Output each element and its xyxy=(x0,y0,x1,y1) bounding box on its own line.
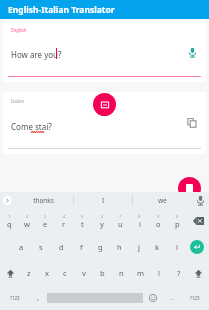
staticText: j xyxy=(138,242,140,252)
button[interactable]: Clear text xyxy=(178,177,201,200)
button[interactable]: . xyxy=(163,286,181,310)
button[interactable]: 6 xyxy=(92,208,111,234)
button[interactable]: m xyxy=(131,260,150,286)
button[interactable]: g xyxy=(91,234,110,260)
button[interactable]: More suggestions xyxy=(0,192,14,208)
staticText: a xyxy=(19,242,24,252)
staticText: Come stai? xyxy=(11,121,52,132)
button[interactable]: 4 xyxy=(54,208,73,234)
staticText: 1 xyxy=(8,214,11,219)
staticText: r xyxy=(62,219,66,229)
button[interactable]: a xyxy=(11,234,31,260)
staticText: 9 xyxy=(157,214,160,219)
button[interactable]: 1 xyxy=(0,208,18,234)
staticText: q xyxy=(7,219,12,229)
button[interactable]: ?123 xyxy=(181,286,209,310)
staticText: k xyxy=(155,242,160,252)
staticText: , xyxy=(37,293,39,303)
staticText: v xyxy=(82,268,86,278)
staticText: w xyxy=(24,219,30,229)
staticText: 2 xyxy=(26,214,29,219)
staticText: ?123 xyxy=(10,295,20,301)
staticText: English xyxy=(11,27,27,33)
staticText: z xyxy=(27,268,31,278)
staticText: ? xyxy=(177,268,181,278)
button[interactable]: we xyxy=(133,192,191,208)
button[interactable]: 9 xyxy=(149,208,168,234)
button[interactable]: Italian xyxy=(3,92,206,154)
button[interactable]: Swap languages xyxy=(93,93,116,116)
staticText: c xyxy=(63,268,67,278)
staticText: m xyxy=(137,268,145,278)
button[interactable]: h xyxy=(110,234,129,260)
staticText: . xyxy=(171,293,173,303)
button[interactable]: , xyxy=(29,286,47,310)
button[interactable]: n xyxy=(112,260,131,286)
button[interactable]: Emoji xyxy=(143,286,163,310)
button[interactable]: d xyxy=(51,234,71,260)
staticText: u xyxy=(118,219,123,229)
button[interactable]: c xyxy=(56,260,74,286)
staticText: o xyxy=(156,219,161,229)
button[interactable]: 5 xyxy=(73,208,92,234)
staticText: i xyxy=(139,219,141,229)
staticText: y xyxy=(100,219,104,229)
staticText: How are you? xyxy=(11,49,62,60)
staticText: thanks xyxy=(33,196,54,205)
staticText: ?123 xyxy=(190,295,200,301)
staticText: 0 xyxy=(176,214,179,219)
button[interactable]: b xyxy=(93,260,112,286)
staticText: h xyxy=(117,242,122,252)
staticText: d xyxy=(59,242,64,252)
staticText: 3 xyxy=(44,214,47,219)
staticText: 6 xyxy=(101,214,104,219)
button[interactable]: English xyxy=(3,21,206,82)
staticText: s xyxy=(39,242,43,252)
button[interactable]: f xyxy=(71,234,91,260)
button[interactable]: l xyxy=(167,234,186,260)
button[interactable]: j xyxy=(129,234,148,260)
button[interactable]: thanks xyxy=(14,192,73,208)
button[interactable]: ? xyxy=(169,260,188,286)
staticText: ! xyxy=(158,268,161,278)
staticText: we xyxy=(158,196,167,205)
button[interactable]: Enter xyxy=(186,234,208,260)
button[interactable]: Shift xyxy=(0,260,20,286)
button[interactable]: v xyxy=(74,260,93,286)
staticText: g xyxy=(98,242,103,252)
button[interactable]: Copy translation xyxy=(185,116,199,130)
staticText: 4 xyxy=(63,214,66,219)
button[interactable]: k xyxy=(148,234,167,260)
staticText: e xyxy=(43,219,48,229)
button[interactable]: Backspace xyxy=(187,208,209,234)
staticText: l xyxy=(176,242,178,252)
staticText: 5 xyxy=(81,214,84,219)
button[interactable]: Voice typing xyxy=(191,192,209,208)
button[interactable]: Shift xyxy=(188,260,209,286)
button[interactable]: ! xyxy=(150,260,169,286)
staticText: t xyxy=(81,219,84,229)
button[interactable]: 3 xyxy=(36,208,54,234)
staticText: b xyxy=(100,268,105,278)
button[interactable]: I xyxy=(74,192,132,208)
button[interactable]: s xyxy=(31,234,51,260)
staticText: I xyxy=(102,196,105,205)
staticText: n xyxy=(119,268,124,278)
staticText: p xyxy=(175,219,180,229)
staticText: English-Italian Translator xyxy=(8,4,115,16)
staticText: f xyxy=(80,242,83,252)
button[interactable]: z xyxy=(20,260,38,286)
staticText: 8 xyxy=(138,214,141,219)
button[interactable]: 2 xyxy=(18,208,36,234)
button[interactable]: x xyxy=(38,260,56,286)
button[interactable]: 0 xyxy=(168,208,187,234)
button[interactable]: 7 xyxy=(111,208,130,234)
button[interactable]: 8 xyxy=(130,208,149,234)
staticText: 7 xyxy=(119,214,122,219)
button[interactable]: Voice input xyxy=(184,44,200,60)
staticText: x xyxy=(45,268,49,278)
button[interactable]: ?123 xyxy=(0,286,29,310)
staticText: Italian xyxy=(11,98,25,104)
